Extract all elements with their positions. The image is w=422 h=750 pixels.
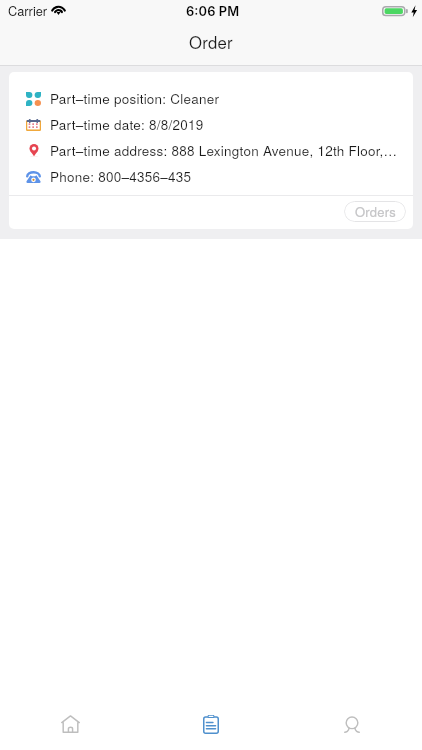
staticText: Order: [189, 30, 233, 54]
staticText: Orders: [355, 202, 396, 221]
button[interactable]: Home: [0, 698, 140, 750]
staticText: Carrier: [8, 1, 48, 19]
staticText: Phone: 800–4356–435: [50, 167, 192, 186]
staticText: Part–time address: 888 Lexington Avenue,…: [50, 141, 401, 160]
button[interactable]: Orders: [140, 698, 281, 750]
staticText: Part–time position: Cleaner: [50, 89, 220, 108]
button[interactable]: Profile: [281, 698, 422, 750]
staticText: Part–time date: 8/8/2019: [50, 115, 204, 134]
button[interactable]: Orders: [344, 201, 406, 222]
staticText: 6:06 PM: [186, 4, 240, 20]
